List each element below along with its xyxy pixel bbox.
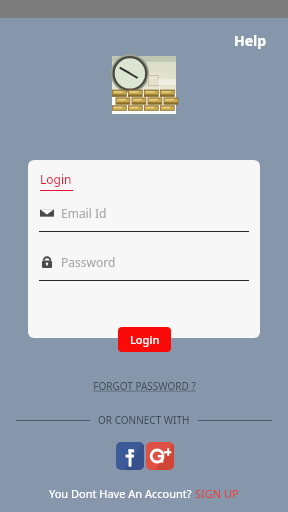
staticText: Login xyxy=(130,332,160,347)
staticText: Email Id xyxy=(61,205,107,221)
staticText: Login xyxy=(40,171,72,187)
button[interactable]: Help xyxy=(228,28,273,53)
button[interactable]: Login xyxy=(118,327,171,352)
button[interactable]: Login xyxy=(40,171,73,191)
button[interactable]: Password xyxy=(28,254,260,281)
button[interactable]: FORGOT PASSWORD ? xyxy=(0,379,288,393)
button[interactable]: SIGN UP xyxy=(195,486,239,501)
staticText: Help xyxy=(234,31,267,50)
staticText: Password xyxy=(61,254,116,270)
staticText: You Dont Have An Account? xyxy=(49,486,195,501)
button[interactable]: Email Id xyxy=(28,205,260,232)
button[interactable]: Sign in with Facebook xyxy=(116,442,144,470)
staticText: SIGN UP xyxy=(195,486,239,501)
staticText: FORGOT PASSWORD ? xyxy=(93,379,196,393)
staticText: OR CONNECT WITH xyxy=(98,413,190,427)
button[interactable]: Sign in with Google Plus xyxy=(146,442,174,470)
